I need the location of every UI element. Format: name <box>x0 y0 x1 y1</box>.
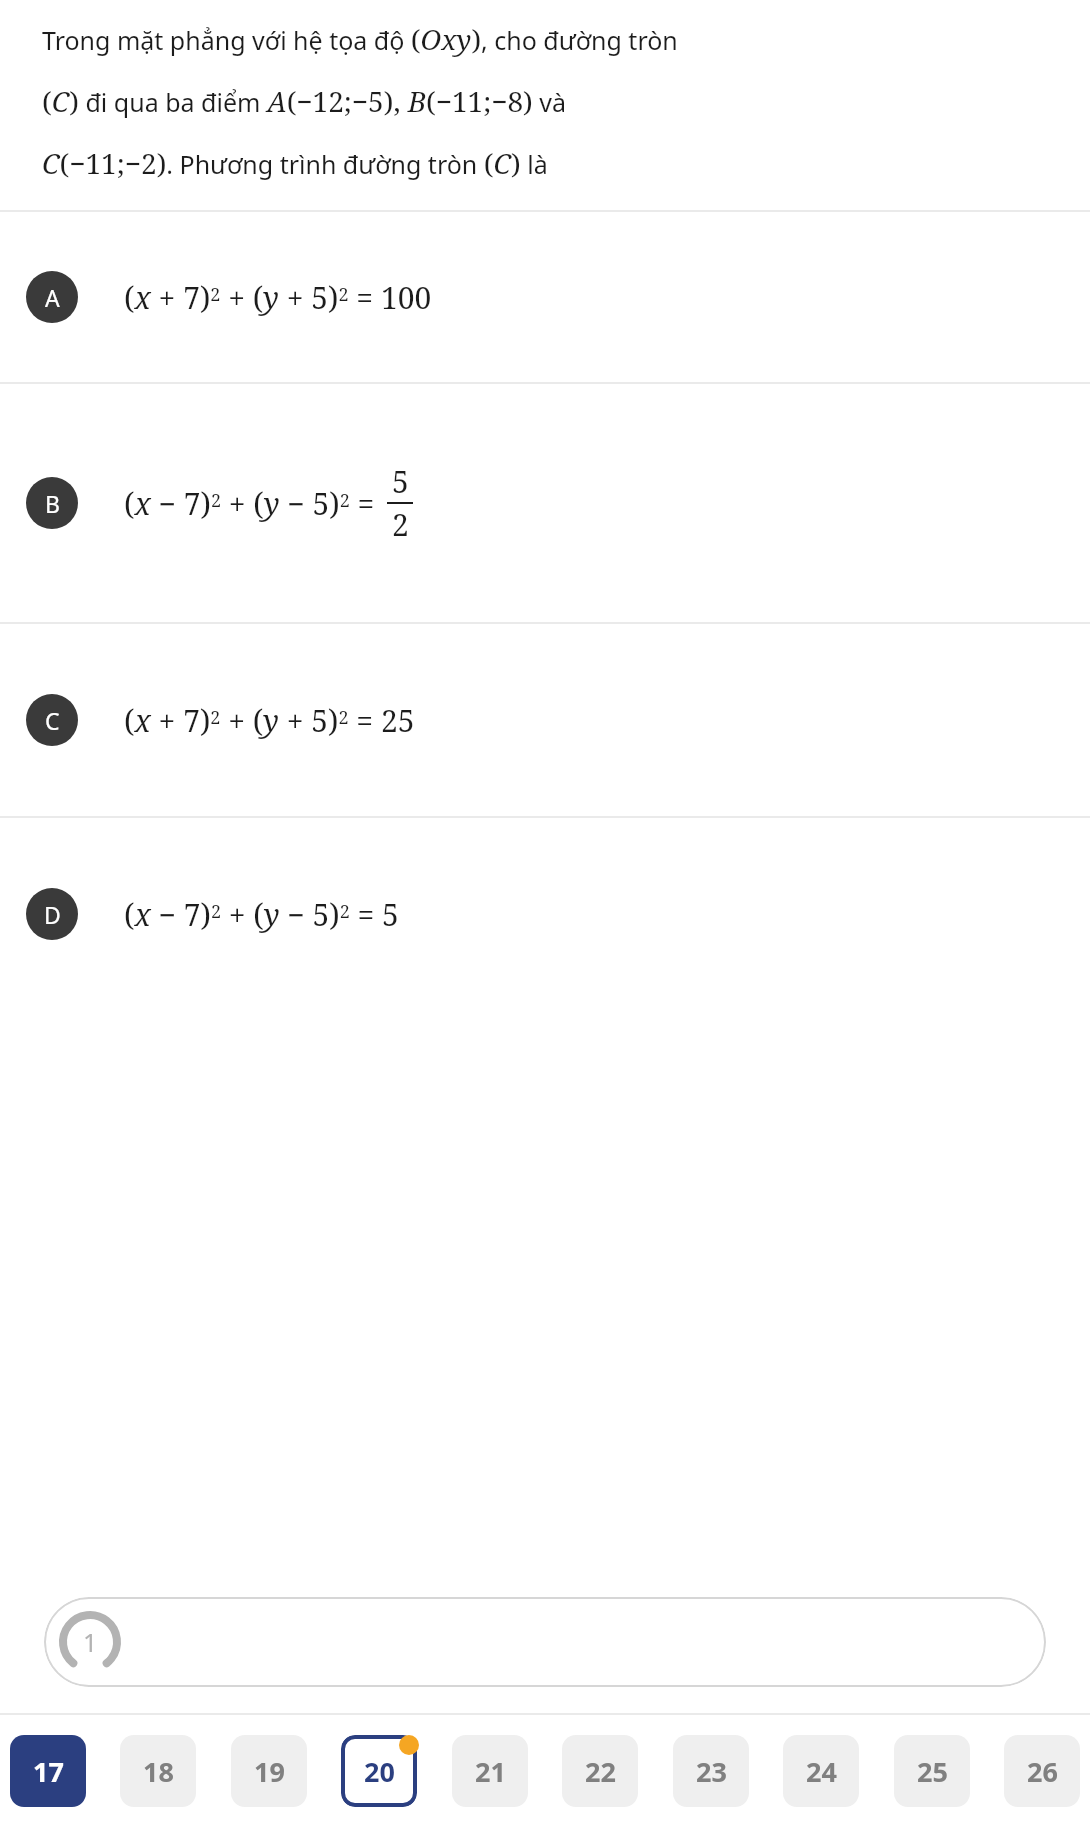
staticText: 26 <box>1027 1753 1058 1790</box>
button[interactable]: C <box>0 624 1090 816</box>
staticText: C <box>45 705 60 736</box>
staticText: 5 <box>392 461 409 502</box>
staticText: (x − 7)2 + (y − 5)2 = <box>124 483 375 524</box>
button[interactable]: 24 <box>783 1735 859 1807</box>
button[interactable]: 26 <box>1004 1735 1080 1807</box>
button[interactable]: 25 <box>894 1735 970 1807</box>
staticText: (C) đi qua ba điểm A(−12;−5), B(−11;−8) … <box>42 82 566 120</box>
button[interactable]: A <box>0 212 1090 382</box>
staticText: (x + 7)2 + (y + 5)2 = 100 <box>124 277 432 318</box>
staticText: 18 <box>143 1753 174 1790</box>
button[interactable]: 18 <box>120 1735 196 1807</box>
button[interactable]: 21 <box>452 1735 528 1807</box>
button[interactable]: D <box>0 818 1090 1010</box>
button[interactable]: 19 <box>231 1735 307 1807</box>
staticText: 2 <box>392 504 409 545</box>
staticText: 17 <box>33 1753 64 1790</box>
staticText: C(−11;−2). Phương trình đường tròn (C) l… <box>42 144 548 182</box>
staticText: D <box>44 899 61 930</box>
staticText: Trong mặt phẳng với hệ tọa độ (Oxy), cho… <box>42 20 678 58</box>
staticText: 21 <box>475 1753 506 1790</box>
button[interactable]: 23 <box>673 1735 749 1807</box>
button[interactable]: Tiến độ câu 1 <box>44 1597 1046 1687</box>
staticText: 24 <box>806 1753 837 1790</box>
button[interactable]: B <box>0 384 1090 622</box>
button[interactable]: 22 <box>562 1735 638 1807</box>
staticText: 25 <box>917 1753 948 1790</box>
button[interactable]: 20 <box>341 1735 417 1807</box>
staticText: 23 <box>696 1753 727 1790</box>
staticText: 20 <box>364 1753 395 1790</box>
staticText: A <box>45 282 60 313</box>
staticText: B <box>45 488 60 519</box>
staticText: 19 <box>254 1753 285 1790</box>
button[interactable]: 17 <box>10 1735 86 1807</box>
staticText: 1 <box>83 1625 98 1659</box>
staticText: (x + 7)2 + (y + 5)2 = 25 <box>124 700 415 741</box>
staticText: (x − 7)2 + (y − 5)2 = 5 <box>124 894 399 935</box>
staticText: 22 <box>585 1753 616 1790</box>
